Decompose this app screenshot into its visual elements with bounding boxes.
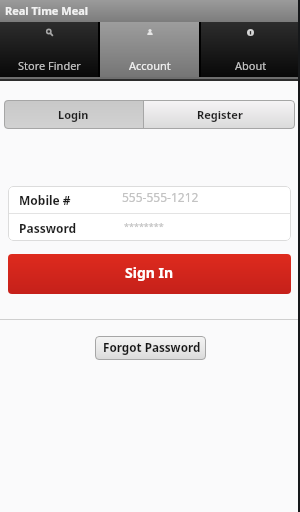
button[interactable]: Password	[8, 214, 291, 241]
staticText: Register	[197, 107, 243, 122]
button[interactable]: Sign In	[8, 254, 291, 294]
staticText: Account	[129, 58, 171, 73]
staticText: Store Finder	[18, 58, 81, 73]
staticText: Real Time Meal	[5, 3, 89, 18]
staticText: Login	[58, 107, 89, 122]
staticText: Sign In	[125, 263, 174, 282]
staticText: 555-555-1212	[122, 189, 199, 205]
staticText: ********	[124, 220, 164, 232]
button[interactable]: Register	[144, 100, 295, 129]
button[interactable]: Login	[4, 100, 143, 129]
button[interactable]: Mobile #	[8, 186, 291, 213]
button[interactable]: Forgot Password	[95, 336, 206, 360]
staticText: Password	[19, 220, 77, 236]
staticText: About	[235, 58, 267, 73]
staticText: Forgot Password	[103, 339, 201, 355]
button[interactable]: Account tab	[100, 22, 199, 77]
button[interactable]: Store Finder tab	[0, 22, 98, 77]
button[interactable]: About tab	[201, 22, 300, 77]
staticText: Mobile #	[19, 192, 71, 208]
